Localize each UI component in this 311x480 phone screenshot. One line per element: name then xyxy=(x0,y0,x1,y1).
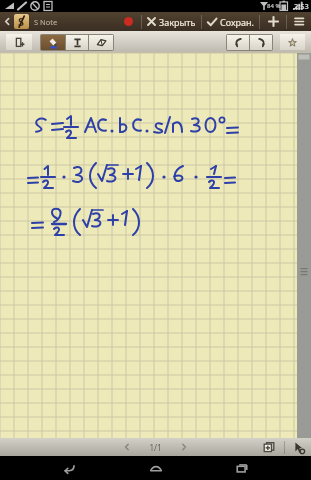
button[interactable]: Add page xyxy=(254,438,284,456)
staticText: 84 % xyxy=(267,2,281,10)
button[interactable]: Favorite xyxy=(280,34,305,50)
button[interactable]: Закрыть xyxy=(147,12,196,31)
button[interactable]: Сохран. xyxy=(207,12,254,31)
staticText: S Note xyxy=(34,17,58,27)
button[interactable]: More options xyxy=(287,12,311,31)
button[interactable]: Recent apps xyxy=(225,456,259,480)
button[interactable]: Redo xyxy=(250,35,272,50)
button[interactable]: Text xyxy=(66,35,88,50)
staticText: S xyxy=(18,14,25,29)
button[interactable]: Next page xyxy=(176,439,192,455)
button[interactable]: Eraser xyxy=(89,35,113,50)
button[interactable]: Back xyxy=(0,12,14,31)
button[interactable]: Home xyxy=(139,456,173,480)
button[interactable]: Record xyxy=(115,12,141,31)
button[interactable]: Undo xyxy=(227,35,249,50)
staticText: 2:53 xyxy=(294,1,309,11)
button[interactable]: S xyxy=(14,14,29,29)
staticText: 1/1 xyxy=(149,442,162,453)
button[interactable]: Add xyxy=(260,12,286,31)
button[interactable]: Back xyxy=(52,456,86,480)
button[interactable]: Pen xyxy=(41,35,65,50)
button[interactable]: Previous page xyxy=(119,439,135,455)
button[interactable]: Pointer mode xyxy=(285,438,311,456)
staticText: Сохран. xyxy=(220,16,254,28)
staticText: Закрыть xyxy=(159,16,196,28)
button[interactable]: New page xyxy=(6,34,32,50)
